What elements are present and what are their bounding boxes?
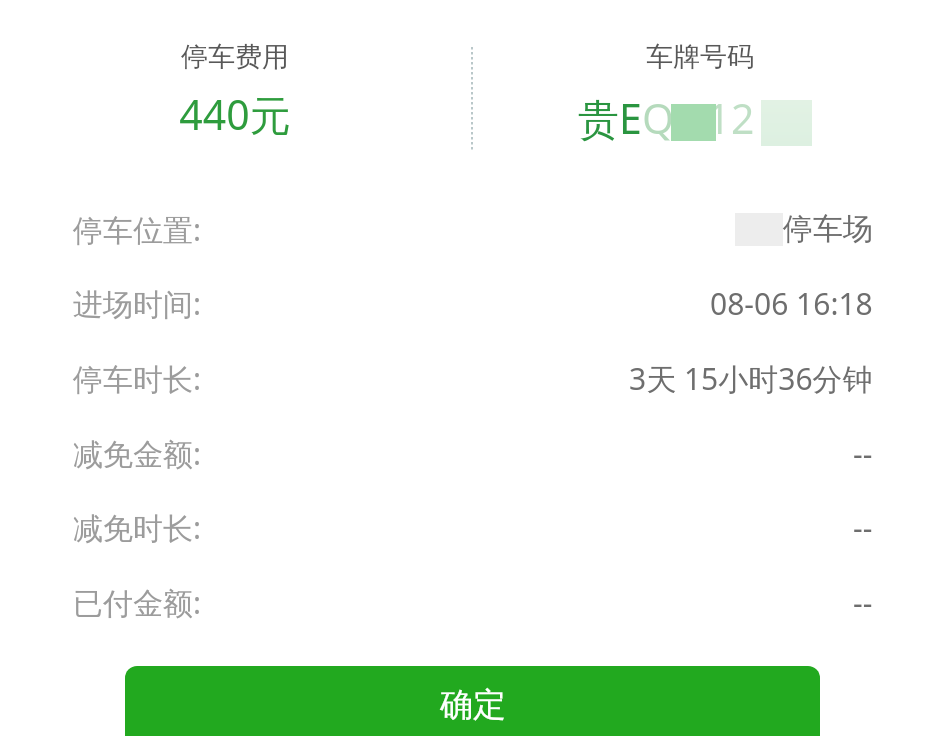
staticText: -- bbox=[853, 582, 873, 623]
staticText: -- bbox=[853, 507, 873, 548]
staticText: 确定 bbox=[440, 684, 506, 726]
staticText: 减免金额: bbox=[73, 433, 202, 474]
staticText: 3天 15小时36分钟 bbox=[629, 358, 873, 399]
staticText: 08-06 16:18 bbox=[710, 283, 873, 324]
button[interactable]: 已付金额: bbox=[0, 579, 945, 625]
staticText: 1 bbox=[675, 90, 731, 146]
staticText: 440元 bbox=[179, 86, 291, 142]
button[interactable]: 进场时间: bbox=[0, 280, 945, 326]
staticText: -- bbox=[853, 433, 873, 474]
button[interactable]: 确定 bbox=[125, 666, 820, 736]
staticText: 进场时间: bbox=[73, 283, 202, 324]
staticText: 停车费用 bbox=[181, 40, 289, 74]
staticText: 停车位置: bbox=[73, 209, 202, 250]
button[interactable]: 停车位置: bbox=[0, 206, 945, 252]
staticText: 车牌号码 bbox=[646, 40, 754, 74]
staticText: 贵E bbox=[578, 90, 642, 146]
staticText: Q bbox=[642, 90, 675, 146]
staticText: 已付金额: bbox=[73, 582, 202, 623]
button[interactable]: 减免时长: bbox=[0, 504, 945, 550]
staticText: 减免时长: bbox=[73, 507, 202, 548]
button[interactable]: 停车时长: bbox=[0, 355, 945, 401]
staticText: 停车场 bbox=[783, 210, 873, 248]
staticText: 停车时长: bbox=[73, 358, 202, 399]
staticText: 2 bbox=[731, 90, 755, 146]
button[interactable]: 减免金额: bbox=[0, 430, 945, 476]
